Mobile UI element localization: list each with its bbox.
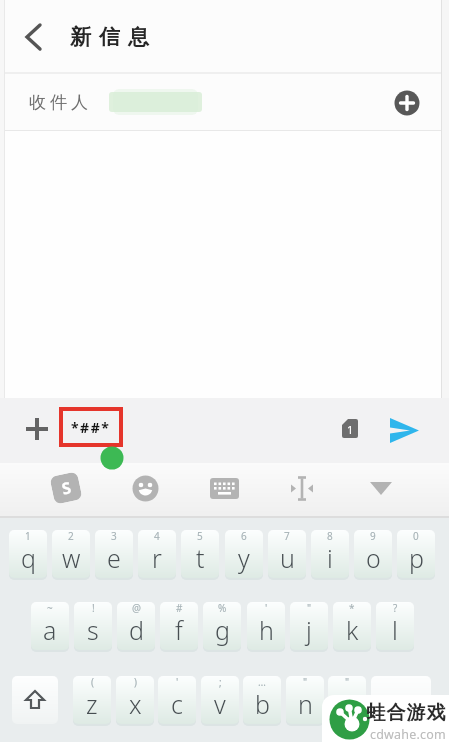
- button[interactable]: 3: [95, 530, 133, 578]
- button[interactable]: [394, 90, 420, 116]
- button[interactable]: ": [290, 602, 328, 650]
- button[interactable]: …: [243, 676, 281, 724]
- button[interactable]: [288, 476, 316, 501]
- staticText: w: [62, 541, 81, 575]
- button[interactable]: ;: [201, 676, 239, 724]
- staticText: 5: [197, 530, 203, 543]
- button[interactable]: S: [49, 471, 83, 505]
- staticText: ": [345, 676, 350, 689]
- button[interactable]: ": [328, 676, 366, 724]
- staticText: m: [336, 687, 359, 721]
- staticText: k: [346, 613, 359, 647]
- staticText: *: [349, 602, 355, 615]
- button[interactable]: [370, 482, 392, 496]
- staticText: a: [43, 613, 57, 647]
- staticText: z: [86, 687, 98, 721]
- button[interactable]: !: [74, 602, 112, 650]
- button[interactable]: [0, 74, 449, 130]
- staticText: …: [258, 676, 266, 689]
- staticText: f: [175, 613, 183, 647]
- button[interactable]: [18, 22, 50, 54]
- staticText: p: [409, 541, 424, 575]
- button[interactable]: ': [158, 676, 196, 724]
- staticText: n: [298, 687, 313, 721]
- button[interactable]: @: [117, 602, 155, 650]
- button[interactable]: ": [286, 676, 324, 724]
- button[interactable]: ': [247, 602, 285, 650]
- staticText: v: [214, 687, 226, 721]
- staticText: e: [107, 541, 121, 575]
- staticText: ?: [393, 602, 398, 615]
- staticText: y: [238, 541, 250, 575]
- staticText: x: [129, 687, 142, 721]
- button[interactable]: 9: [354, 530, 392, 578]
- staticText: %: [218, 602, 227, 615]
- button[interactable]: (: [73, 676, 111, 724]
- button[interactable]: *: [333, 602, 371, 650]
- staticText: 0: [413, 530, 419, 543]
- button[interactable]: ~: [31, 602, 69, 650]
- staticText: r: [152, 541, 162, 575]
- staticText: t: [196, 541, 205, 575]
- staticText: S: [60, 476, 73, 500]
- button[interactable]: 7: [268, 530, 306, 578]
- staticText: ): [134, 676, 137, 689]
- button[interactable]: [388, 414, 422, 448]
- staticText: 1: [25, 530, 31, 543]
- staticText: 7: [284, 530, 290, 543]
- button[interactable]: #: [160, 602, 198, 650]
- staticText: h: [259, 613, 274, 647]
- staticText: ;: [219, 676, 222, 689]
- staticText: !: [92, 602, 95, 615]
- staticText: 4: [154, 530, 160, 543]
- button[interactable]: %: [203, 602, 241, 650]
- staticText: c: [171, 687, 183, 721]
- button[interactable]: [210, 478, 239, 499]
- button[interactable]: [132, 475, 159, 502]
- button[interactable]: 1: [9, 530, 47, 578]
- staticText: ": [307, 602, 312, 615]
- staticText: u: [280, 541, 295, 575]
- staticText: 收件人: [27, 92, 90, 113]
- button[interactable]: [371, 676, 431, 724]
- staticText: 蛙合游戏: [366, 701, 446, 725]
- staticText: 1: [347, 422, 354, 437]
- button[interactable]: ): [116, 676, 154, 724]
- staticText: o: [366, 541, 381, 575]
- button[interactable]: *##*: [59, 407, 123, 447]
- staticText: s: [87, 613, 99, 647]
- button[interactable]: 2: [52, 530, 90, 578]
- staticText: 9: [370, 530, 376, 543]
- button[interactable]: ?: [376, 602, 414, 650]
- button[interactable]: [24, 416, 50, 442]
- staticText: (: [91, 676, 94, 689]
- staticText: 8: [327, 530, 333, 543]
- staticText: #: [176, 602, 183, 615]
- staticText: j: [306, 613, 312, 647]
- staticText: ': [265, 602, 268, 615]
- staticText: cdwahe.com: [370, 726, 446, 742]
- staticText: q: [21, 541, 36, 575]
- staticText: 新信息: [66, 24, 153, 50]
- button[interactable]: 8: [311, 530, 349, 578]
- staticText: g: [215, 613, 230, 647]
- button[interactable]: 5: [181, 530, 219, 578]
- staticText: d: [129, 613, 144, 647]
- button[interactable]: 4: [138, 530, 176, 578]
- staticText: @: [132, 602, 141, 615]
- staticText: 2: [68, 530, 74, 543]
- staticText: ': [176, 676, 179, 689]
- staticText: *##*: [71, 418, 111, 437]
- button[interactable]: 6: [225, 530, 263, 578]
- staticText: b: [255, 687, 270, 721]
- staticText: ": [303, 676, 308, 689]
- staticText: 3: [111, 530, 117, 543]
- button[interactable]: [12, 676, 58, 724]
- button[interactable]: 0: [397, 530, 435, 578]
- staticText: l: [392, 613, 398, 647]
- staticText: ~: [47, 602, 53, 615]
- staticText: i: [327, 541, 333, 575]
- staticText: 6: [241, 530, 247, 543]
